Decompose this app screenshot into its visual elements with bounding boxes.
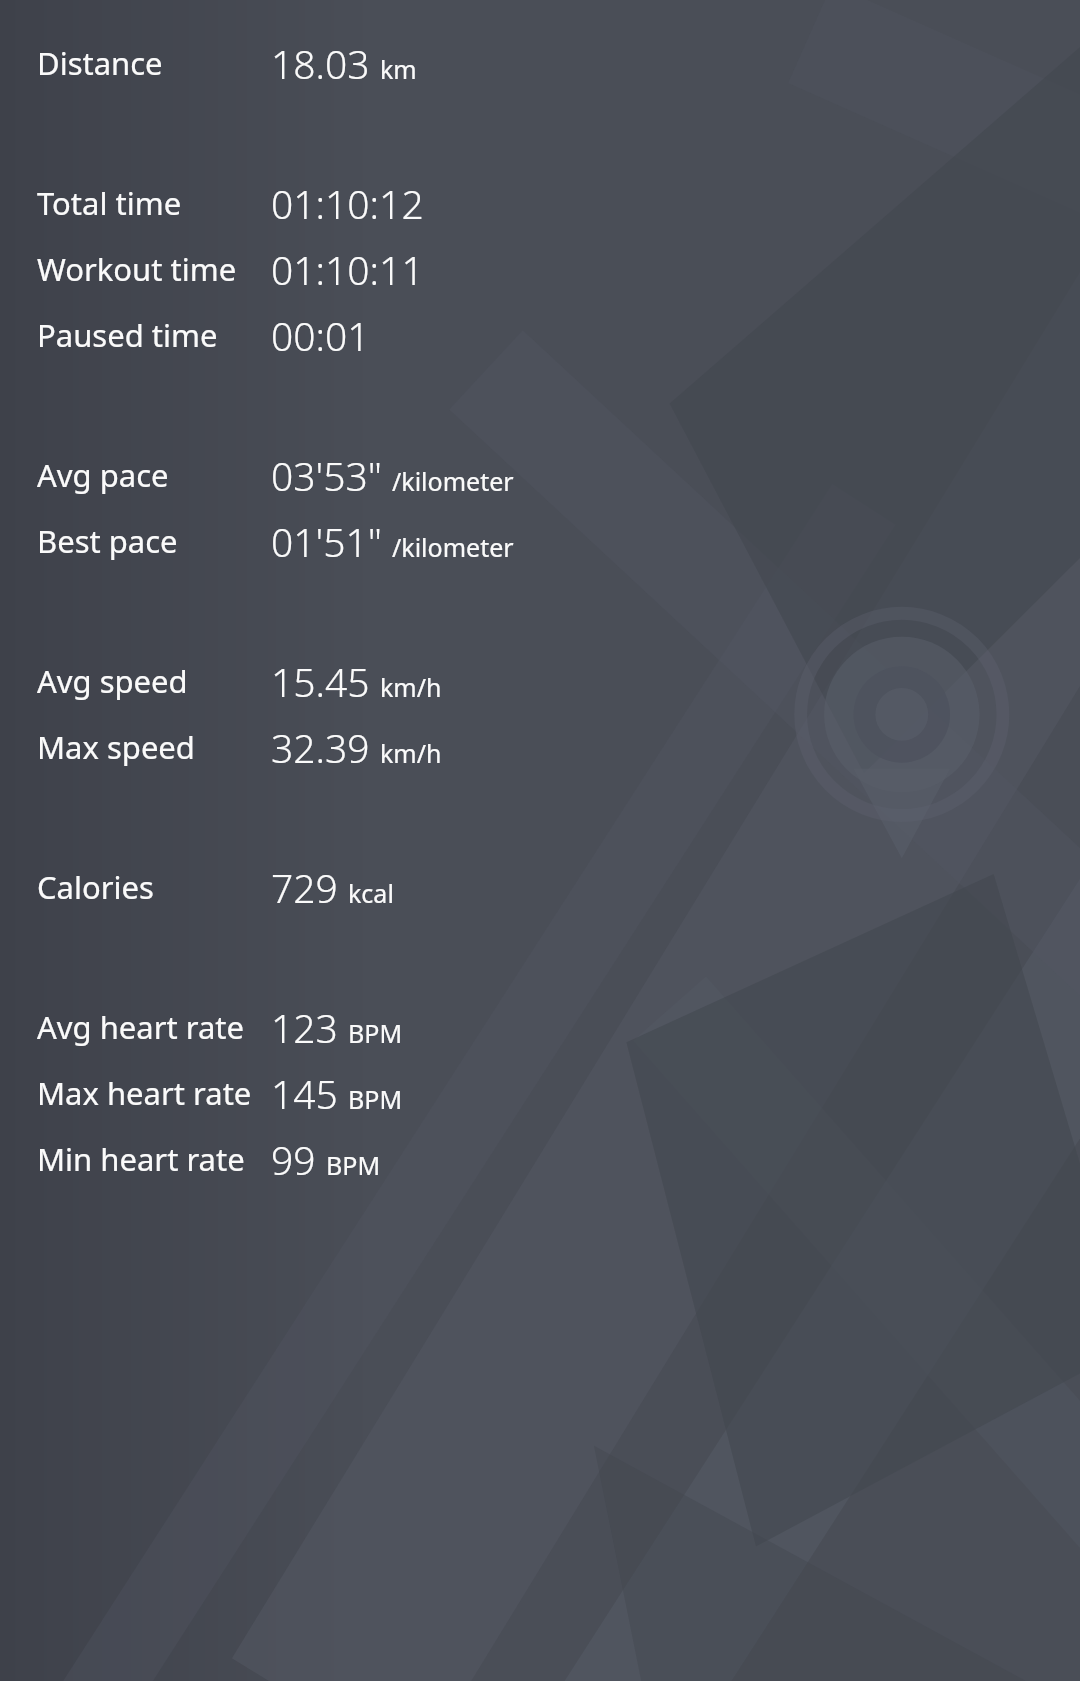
staticText: Best pace [37,520,178,562]
button[interactable]: Max speed [0,714,1080,780]
staticText: Paused time [37,314,218,356]
staticText: BPM [348,1082,403,1116]
staticText: Max heart rate [37,1072,252,1114]
staticText: 99 [271,1133,316,1186]
staticText: Avg pace [37,454,169,496]
staticText: BPM [326,1148,381,1182]
button[interactable]: Total time [0,170,1080,236]
staticText: 01'51" [271,515,382,568]
staticText: 18.03 [271,37,370,90]
button[interactable]: Max heart rate [0,1060,1080,1126]
staticText: km [380,52,417,86]
staticText: kcal [348,876,394,910]
staticText: /kilometer [392,464,514,498]
button[interactable]: Calories [0,854,1080,920]
button[interactable]: Workout time [0,236,1080,302]
staticText: 15.45 [271,655,370,708]
staticText: km/h [380,736,442,770]
staticText: 03'53" [271,449,382,502]
staticText: Avg speed [37,660,188,702]
staticText: Calories [37,866,154,908]
staticText: 32.39 [271,721,370,774]
button[interactable]: Avg speed [0,648,1080,714]
staticText: 00:01 [271,309,370,362]
staticText: 01:10:12 [271,177,424,230]
staticText: Total time [37,182,182,224]
button[interactable]: Min heart rate [0,1126,1080,1192]
staticText: BPM [348,1016,403,1050]
staticText: Distance [37,42,163,84]
staticText: 01:10:11 [271,243,424,296]
staticText: /kilometer [392,530,514,564]
button[interactable]: Avg heart rate [0,994,1080,1060]
button[interactable]: Distance [0,30,1080,96]
staticText: Avg heart rate [37,1006,245,1048]
button[interactable]: Paused time [0,302,1080,368]
staticText: km/h [380,670,442,704]
staticText: 123 [271,1001,338,1054]
button[interactable]: Best pace [0,508,1080,574]
staticText: 145 [271,1067,338,1120]
staticText: Min heart rate [37,1138,245,1180]
staticText: 729 [271,861,338,914]
staticText: Workout time [37,248,237,290]
button[interactable]: Avg pace [0,442,1080,508]
staticText: Max speed [37,726,195,768]
